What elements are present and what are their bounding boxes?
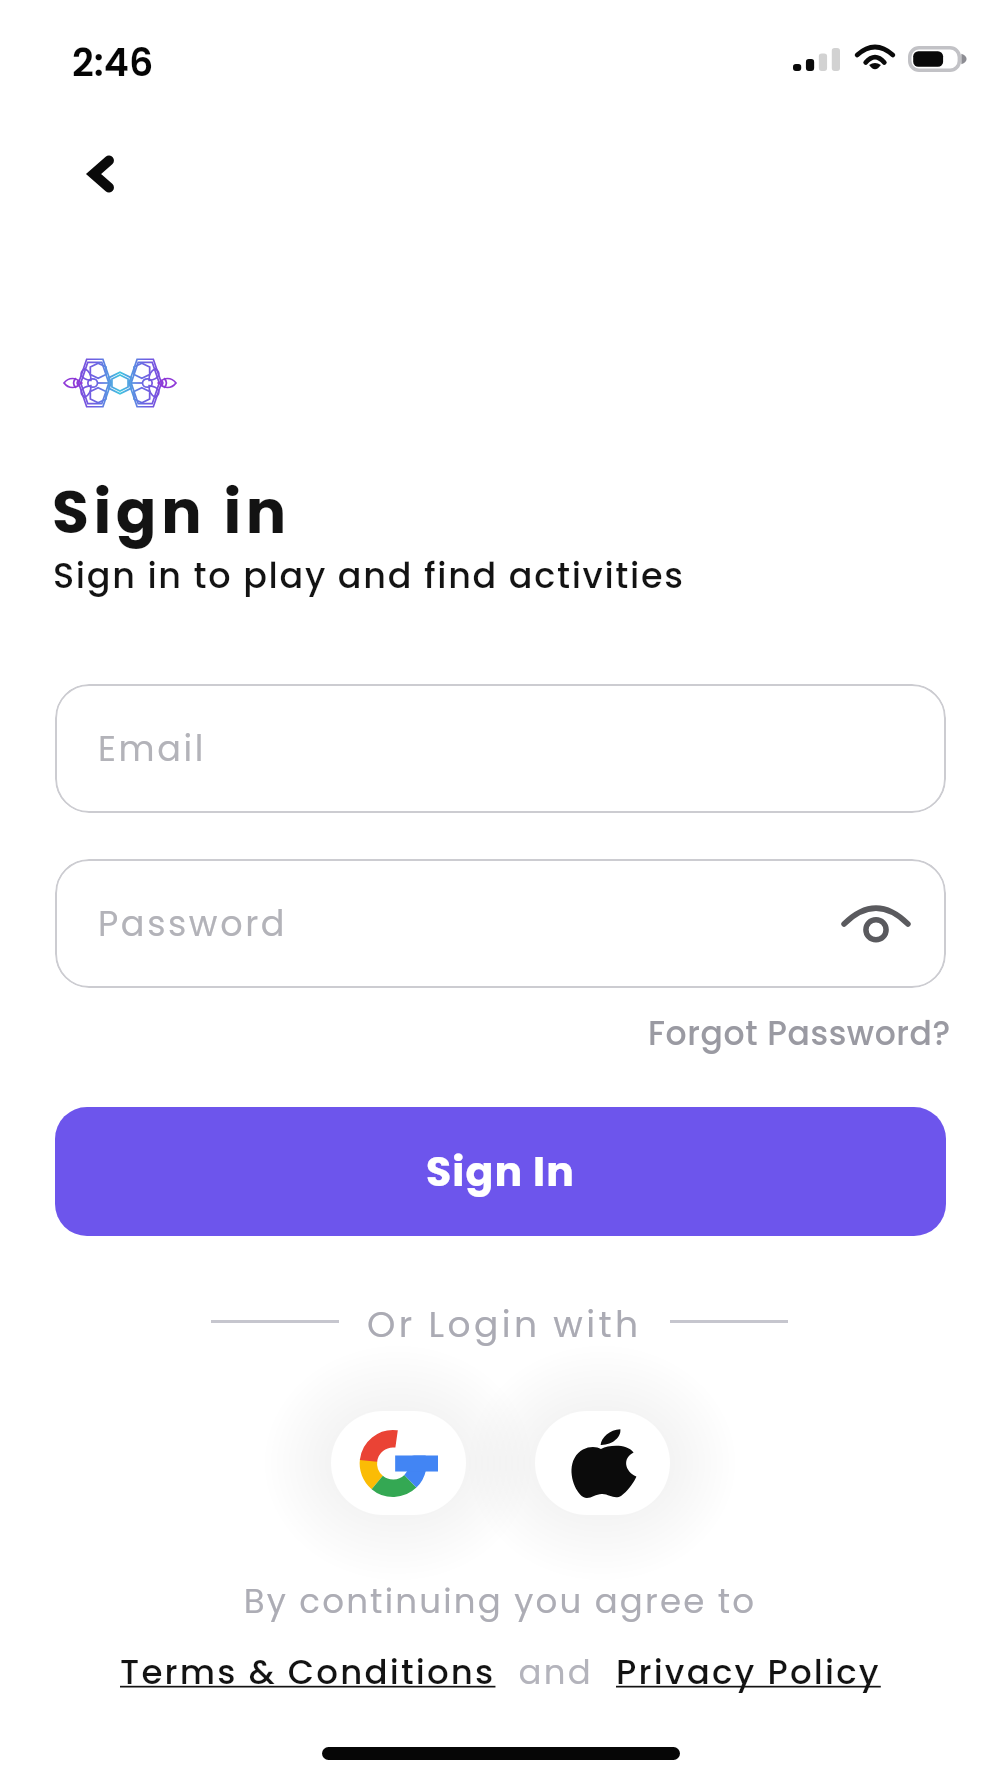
staticText: Email — [98, 724, 206, 773]
staticText: Sign In — [426, 1143, 575, 1200]
button[interactable]: Terms & Conditions — [120, 1648, 496, 1696]
staticText: Or Login with — [367, 1299, 642, 1349]
button[interactable]: Email — [55, 684, 946, 813]
button[interactable]: Show password — [838, 886, 914, 962]
staticText: Sign in — [52, 470, 291, 554]
staticText: and — [496, 1648, 616, 1696]
button[interactable]: Sign in with Google — [331, 1411, 466, 1515]
button[interactable]: Sign In — [55, 1107, 946, 1236]
staticText: Password — [98, 899, 288, 948]
staticText: Sign in to play and find activities — [53, 551, 685, 600]
button[interactable]: Privacy Policy — [616, 1648, 881, 1696]
button[interactable]: Back — [61, 135, 139, 213]
staticText: 2:46 — [72, 36, 154, 89]
button[interactable]: Forgot Password? — [640, 1006, 959, 1060]
button[interactable]: Sign in with Apple — [535, 1411, 670, 1515]
staticText: Forgot Password? — [648, 1010, 951, 1056]
staticText: By continuing you agree to — [0, 1577, 1000, 1625]
